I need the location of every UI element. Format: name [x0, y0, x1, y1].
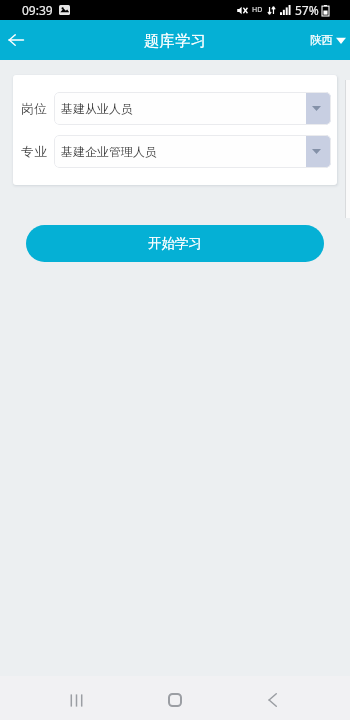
staticText: 题库学习 [144, 31, 206, 51]
staticText: 57% [295, 2, 319, 18]
button[interactable]: Back [248, 676, 296, 720]
staticText: 陕西 [310, 33, 333, 47]
button[interactable]: 岗位: 基建从业人员 [54, 92, 331, 125]
button[interactable]: Home [151, 676, 199, 720]
button[interactable]: Back [1, 25, 31, 55]
button[interactable]: 开始学习 [26, 225, 324, 262]
button[interactable]: 专业: 基建企业管理人员 [54, 135, 331, 168]
button[interactable]: Recent apps [52, 676, 100, 720]
staticText: 基建从业人员 [61, 101, 306, 116]
staticText: 岗位 [21, 101, 48, 117]
staticText: 开始学习 [148, 235, 202, 252]
button[interactable]: 陕西 [308, 28, 348, 52]
staticText: HD [252, 5, 263, 15]
staticText: 基建企业管理人员 [61, 144, 306, 159]
staticText: 专业 [21, 144, 48, 160]
staticText: 09:39 [22, 2, 53, 18]
